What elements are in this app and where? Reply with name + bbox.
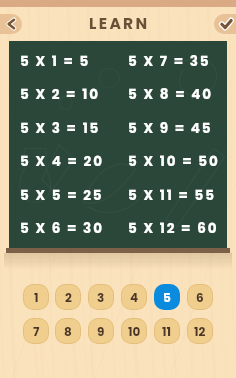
button[interactable]: 5: [154, 284, 180, 310]
staticText: 5: [163, 289, 171, 306]
button[interactable]: 7: [23, 318, 49, 344]
staticText: 5 X 8 = 40: [128, 85, 213, 104]
button[interactable]: 11: [154, 318, 180, 344]
staticText: 2: [65, 289, 72, 306]
button[interactable]: 3: [88, 284, 114, 310]
staticText: 8: [64, 323, 72, 340]
staticText: 5 X 9 = 45: [128, 119, 213, 138]
staticText: LEARN: [89, 13, 150, 35]
staticText: 5 X 3 = 15: [20, 119, 101, 138]
staticText: 5 X 12 = 60: [128, 219, 219, 238]
button[interactable]: 8: [55, 318, 81, 344]
staticText: 4: [130, 289, 139, 306]
button[interactable]: Done: [214, 14, 236, 34]
staticText: 1: [34, 289, 39, 306]
staticText: 5 X 11 = 55: [128, 186, 216, 205]
button[interactable]: 6: [187, 284, 213, 310]
button[interactable]: 2: [55, 284, 81, 310]
staticText: 5 X 7 = 35: [128, 52, 211, 71]
button[interactable]: 10: [121, 318, 147, 344]
staticText: 5 X 1 = 5: [20, 52, 91, 71]
button[interactable]: 12: [187, 318, 213, 344]
staticText: 6: [196, 289, 204, 306]
staticText: 12: [194, 323, 206, 340]
staticText: 3: [97, 289, 105, 306]
staticText: 5 X 2 = 10: [20, 85, 100, 104]
staticText: 9: [97, 323, 105, 340]
button[interactable]: Back: [0, 14, 22, 34]
button[interactable]: 9: [88, 318, 114, 344]
staticText: 11: [162, 323, 172, 340]
staticText: 10: [128, 323, 141, 340]
staticText: 5 X 10 = 50: [128, 152, 220, 171]
staticText: 5 X 6 = 30: [20, 219, 104, 238]
button[interactable]: 4: [121, 284, 147, 310]
staticText: 7: [33, 323, 40, 340]
staticText: 5 X 5 = 25: [20, 186, 104, 205]
button[interactable]: 1: [23, 284, 49, 310]
staticText: 5 X 4 = 20: [20, 152, 104, 171]
